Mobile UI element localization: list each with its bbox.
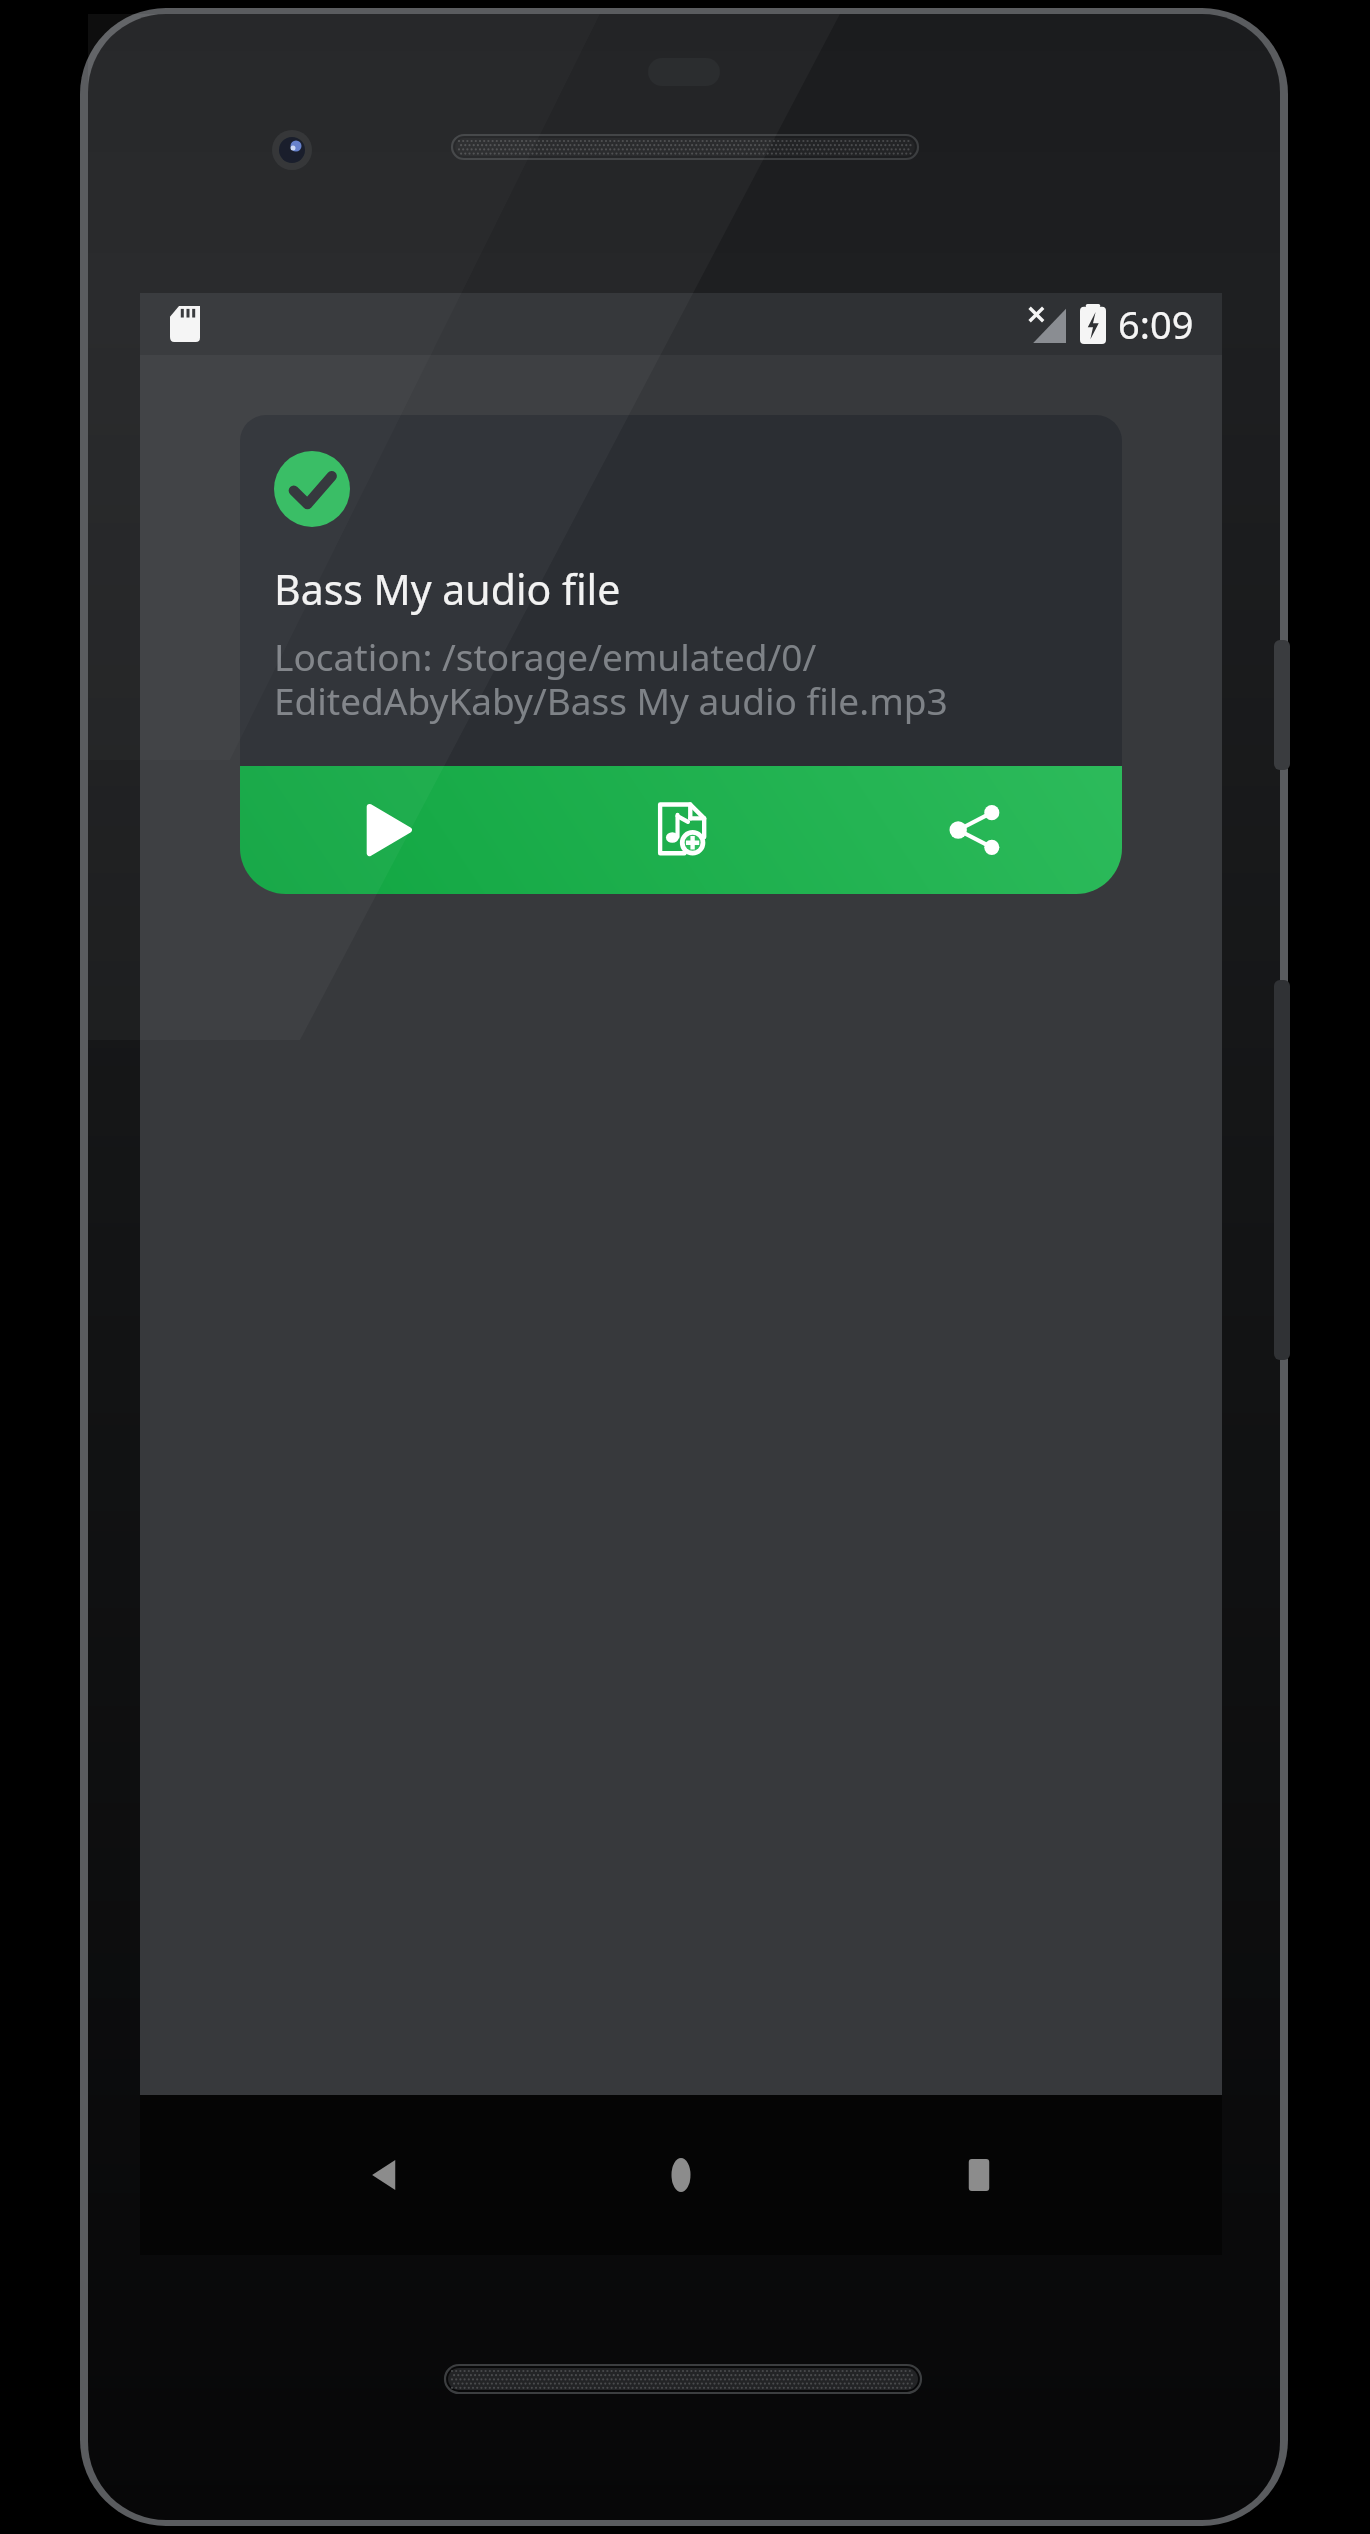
button[interactable]: Bass My audio file	[240, 415, 1122, 766]
staticText: 6:09	[1118, 298, 1194, 350]
button[interactable]: Share	[828, 766, 1122, 894]
button[interactable]: Recent apps	[924, 2120, 1034, 2230]
button[interactable]: Save as new audio file	[534, 766, 828, 894]
button[interactable]: Home	[626, 2120, 736, 2230]
button[interactable]: Play	[240, 766, 534, 894]
staticText: Bass My audio file	[274, 561, 621, 617]
staticText: Location: /storage/emulated/0/EditedAbyK…	[274, 631, 1088, 726]
button[interactable]: Back	[328, 2120, 438, 2230]
